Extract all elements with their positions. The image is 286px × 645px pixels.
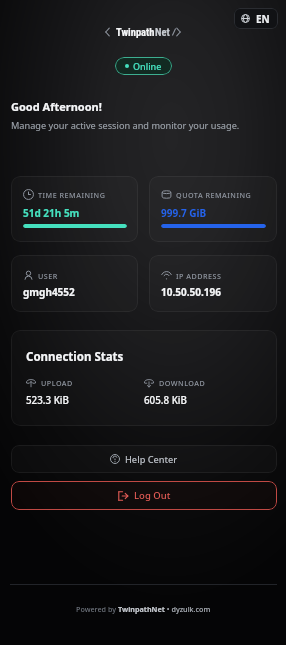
staticText: 605.8 KiB	[144, 394, 187, 407]
button[interactable]: Help Center	[11, 445, 277, 473]
button[interactable]: Log Out	[11, 481, 277, 510]
staticText: 523.3 KiB	[26, 394, 69, 407]
button[interactable]: Twinpath	[105, 26, 181, 38]
staticText: Net	[155, 26, 170, 38]
staticText: gmgh4552	[23, 285, 75, 299]
staticText: Help Center	[125, 453, 178, 466]
staticText: DOWNLOAD	[159, 378, 206, 388]
button[interactable]: TIME REMAINING	[11, 176, 138, 242]
staticText: QUOTA REMAINING	[176, 190, 252, 200]
staticText: • dyzulk.com	[165, 604, 211, 614]
staticText: Good Afternoon!	[11, 99, 102, 114]
staticText: EN	[256, 12, 270, 26]
staticText: Manage your active session and monitor y…	[11, 119, 240, 132]
staticText: 10.50.50.196	[161, 285, 221, 299]
staticText: UPLOAD	[41, 378, 73, 388]
button[interactable]: USER	[11, 255, 138, 312]
staticText: USER	[38, 271, 58, 281]
button[interactable]: QUOTA REMAINING	[149, 176, 277, 242]
staticText: IP ADDRESS	[176, 271, 222, 281]
staticText: Connection Stats	[26, 349, 124, 365]
staticText: 51d 21h 5m	[23, 206, 80, 220]
staticText: 999.7 GiB	[161, 206, 207, 220]
button[interactable]: Online	[115, 57, 172, 75]
button[interactable]: IP ADDRESS	[149, 255, 277, 312]
staticText: Online	[133, 60, 162, 72]
staticText: Powered by	[76, 604, 118, 614]
staticText: Twinpath	[116, 26, 155, 38]
staticText: TwinpathNet	[118, 604, 165, 614]
button[interactable]: Change language	[234, 8, 278, 29]
staticText: Log Out	[134, 489, 171, 502]
staticText: TIME REMAINING	[38, 190, 106, 200]
